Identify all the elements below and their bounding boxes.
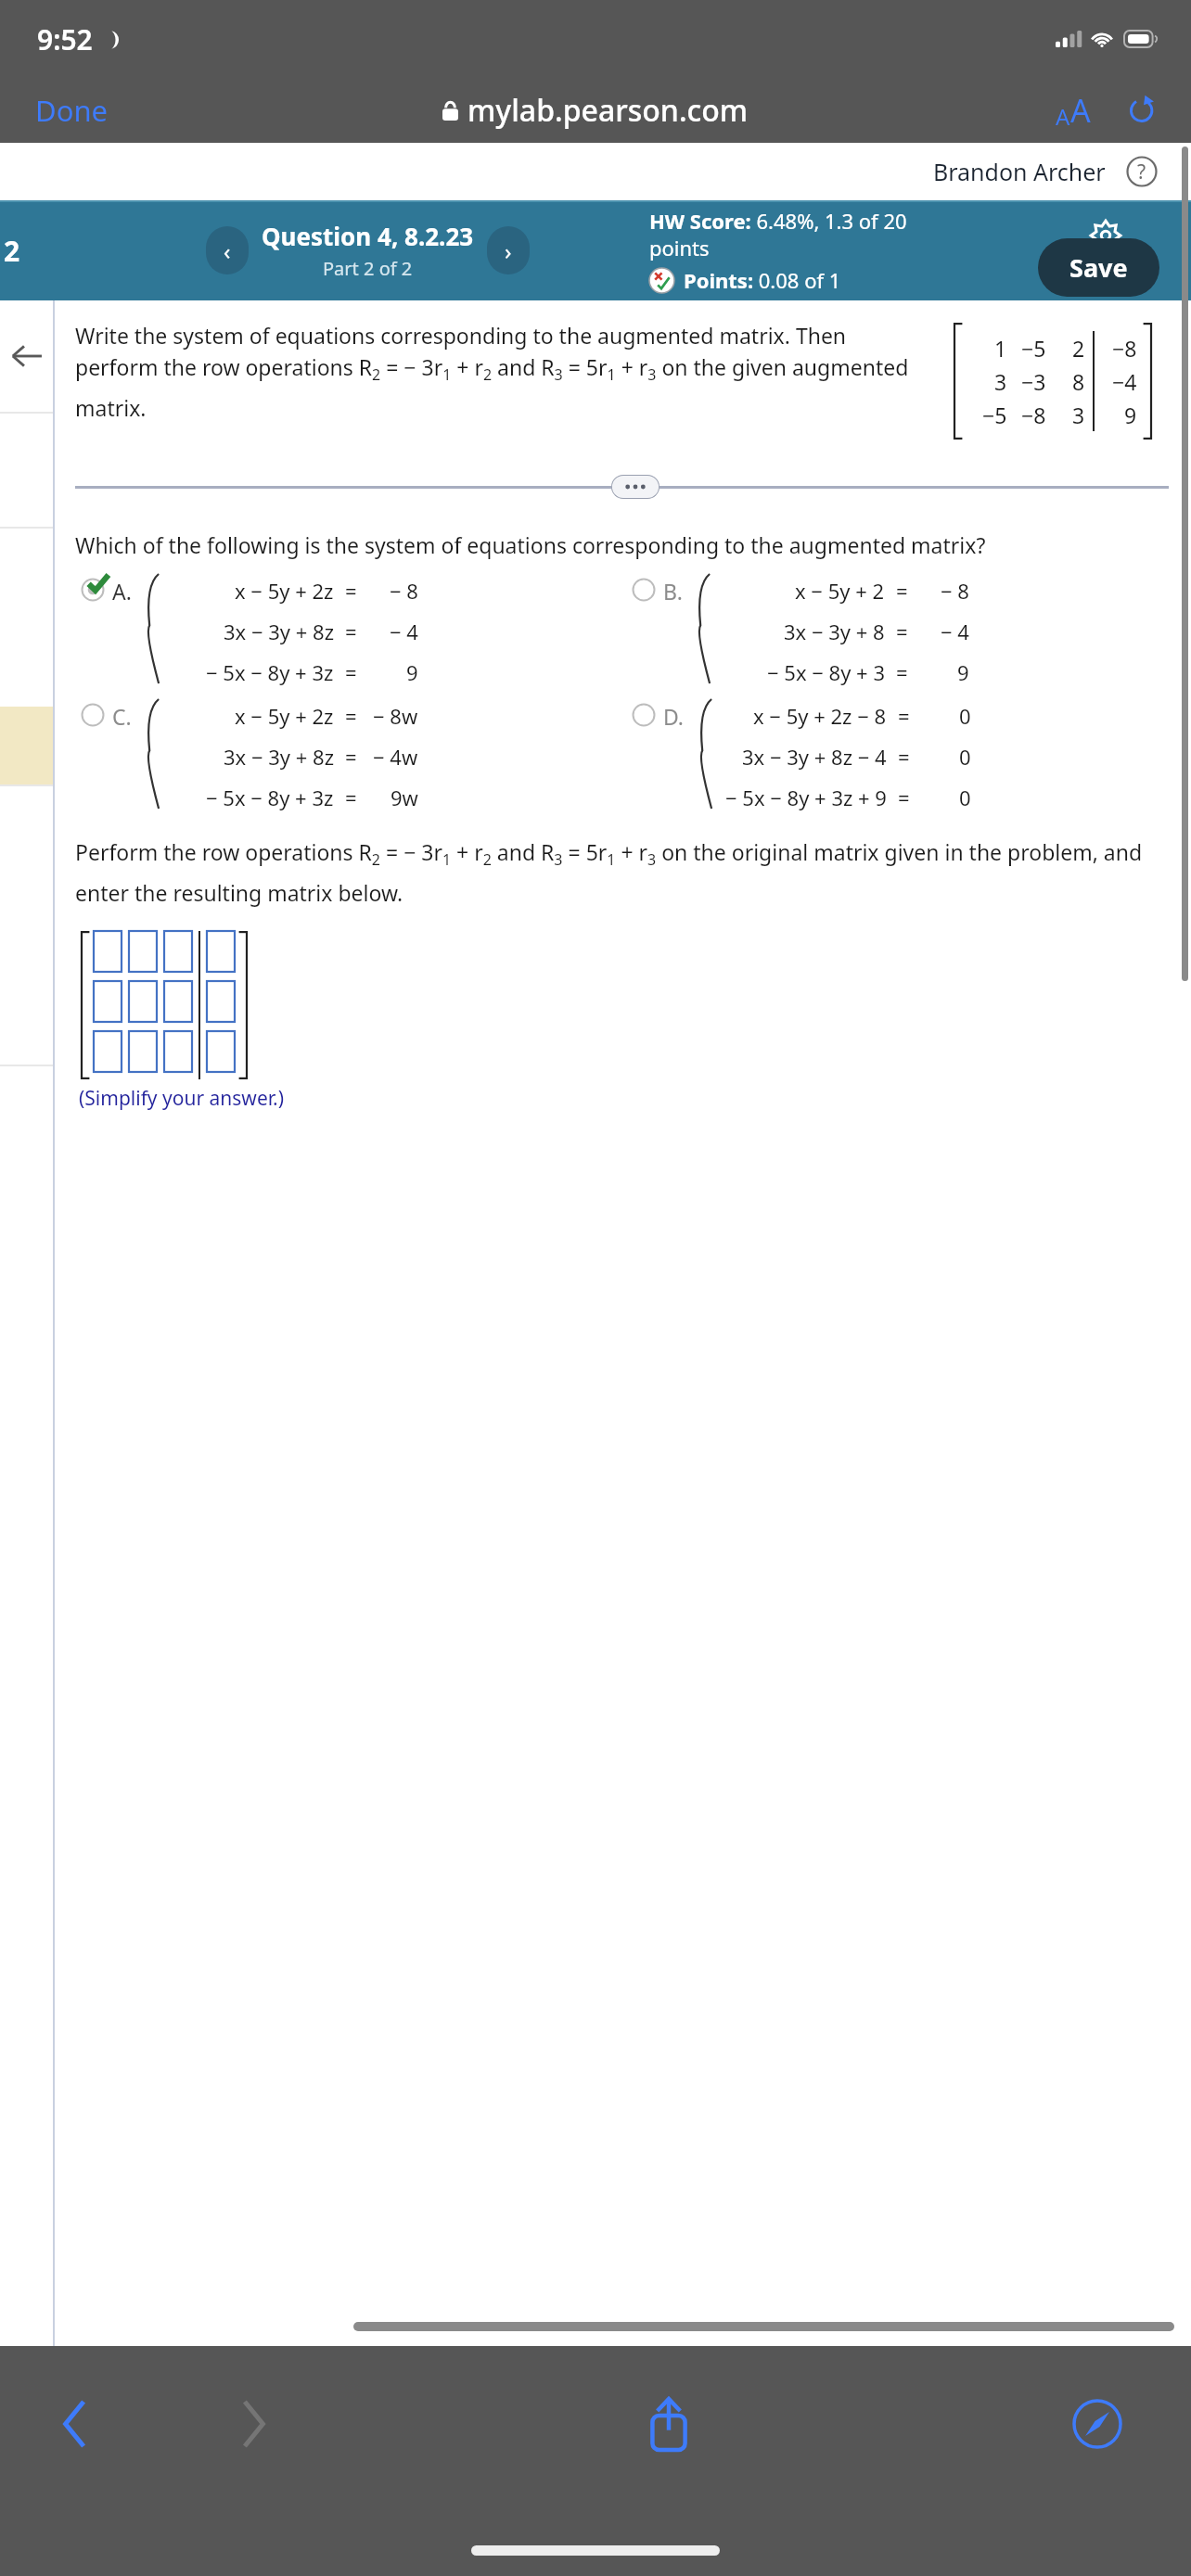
staticText: −8 bbox=[1021, 401, 1046, 429]
staticText: Which of the following is the system of … bbox=[75, 530, 986, 559]
staticText: = bbox=[896, 618, 908, 645]
staticText: = bbox=[345, 618, 357, 645]
button[interactable]: Share bbox=[632, 2381, 706, 2467]
staticText: 0 bbox=[959, 743, 971, 771]
staticText: − 5x − 8y + 3 bbox=[767, 658, 885, 686]
staticText: = bbox=[345, 743, 357, 771]
staticText: 9 bbox=[1124, 401, 1137, 429]
staticText: = bbox=[898, 743, 910, 771]
button[interactable]: Matrix entry bbox=[207, 931, 235, 972]
button[interactable]: B. bbox=[626, 572, 1178, 688]
staticText: 0 bbox=[959, 702, 971, 730]
button[interactable]: Help bbox=[1126, 156, 1158, 187]
staticText: 3x − 3y + 8 bbox=[784, 618, 885, 645]
button[interactable]: D. bbox=[626, 697, 1178, 813]
button[interactable]: Matrix entry bbox=[207, 981, 235, 1022]
staticText: 2 bbox=[4, 232, 20, 270]
staticText: x − 5y + 2z bbox=[235, 702, 334, 730]
staticText: = bbox=[345, 784, 357, 811]
staticText: = bbox=[345, 658, 357, 686]
button[interactable]: Previous question bbox=[206, 226, 249, 274]
staticText: Question 4, 8.2.23 bbox=[262, 220, 474, 252]
staticText: = bbox=[345, 577, 357, 605]
button[interactable]: Matrix entry bbox=[129, 1031, 157, 1072]
staticText: − 4 bbox=[941, 618, 969, 645]
staticText: A bbox=[1056, 101, 1070, 132]
staticText: − 5x − 8y + 3z + 9 bbox=[725, 784, 887, 811]
button[interactable]: Forward bbox=[224, 2385, 282, 2463]
staticText: −3 bbox=[1021, 367, 1046, 396]
staticText: = bbox=[896, 658, 908, 686]
staticText: − 8 bbox=[390, 577, 418, 605]
button[interactable]: Next question bbox=[487, 226, 530, 274]
staticText: 3x − 3y + 8z bbox=[224, 618, 334, 645]
staticText: 0 bbox=[959, 784, 971, 811]
button[interactable]: Matrix entry bbox=[94, 981, 122, 1022]
staticText: 3x − 3y + 8z − 4 bbox=[742, 743, 887, 771]
button[interactable]: Matrix entry bbox=[207, 1031, 235, 1072]
staticText: − 8w bbox=[373, 702, 418, 730]
staticText: 9:52 bbox=[37, 20, 93, 58]
staticText: −8 bbox=[1112, 334, 1137, 363]
staticText: 9w bbox=[391, 784, 418, 811]
staticText: Points: 0.08 of 1 bbox=[684, 266, 841, 294]
staticText: HW Score: 6.48%, 1.3 of 20 points bbox=[649, 207, 955, 261]
button[interactable]: Matrix entry bbox=[164, 981, 192, 1022]
staticText: 2 bbox=[1072, 334, 1085, 363]
staticText: 9 bbox=[406, 658, 418, 686]
staticText: − 8 bbox=[941, 577, 969, 605]
button[interactable]: Back bbox=[46, 2385, 104, 2463]
button[interactable]: Open in Safari bbox=[1056, 2382, 1139, 2466]
staticText: A. bbox=[112, 577, 132, 606]
staticText: 8 bbox=[1072, 367, 1085, 396]
staticText: x − 5y + 2z bbox=[235, 577, 334, 605]
button[interactable]: Reload bbox=[1117, 87, 1167, 134]
staticText: C. bbox=[112, 702, 132, 731]
staticText: ? bbox=[1137, 159, 1146, 185]
button[interactable]: C. bbox=[75, 697, 626, 813]
button[interactable]: More options bbox=[611, 475, 660, 499]
staticText: D. bbox=[663, 702, 685, 731]
staticText: ‹ bbox=[224, 236, 231, 266]
staticText: (Simplify your answer.) bbox=[79, 1085, 284, 1112]
staticText: 1 bbox=[994, 334, 1007, 363]
staticText: = bbox=[898, 784, 910, 811]
staticText: 3 bbox=[994, 367, 1007, 396]
staticText: − 4 bbox=[390, 618, 418, 645]
staticText: x − 5y + 2z − 8 bbox=[753, 702, 887, 730]
staticText: −5 bbox=[982, 401, 1007, 429]
staticText: = bbox=[345, 702, 357, 730]
staticText: = bbox=[896, 577, 908, 605]
staticText: Brandon Archer bbox=[933, 156, 1106, 187]
staticText: Perform the row operations R2 = − 3r1 + … bbox=[75, 837, 1163, 907]
button[interactable]: Matrix entry bbox=[94, 1031, 122, 1072]
staticText: A bbox=[1070, 89, 1091, 132]
staticText: Save bbox=[1069, 250, 1128, 285]
staticText: 3x − 3y + 8z bbox=[224, 743, 334, 771]
staticText: −4 bbox=[1112, 367, 1137, 396]
staticText: − 5x − 8y + 3z bbox=[206, 658, 334, 686]
button[interactable]: Matrix entry bbox=[164, 1031, 192, 1072]
staticText: − 4w bbox=[373, 743, 418, 771]
button[interactable]: Matrix entry bbox=[94, 931, 122, 972]
staticText: B. bbox=[663, 577, 683, 606]
button[interactable]: Save bbox=[1038, 238, 1159, 297]
button[interactable]: Matrix entry bbox=[129, 981, 157, 1022]
staticText: = bbox=[898, 702, 910, 730]
staticText: −5 bbox=[1021, 334, 1046, 363]
staticText: Write the system of equations correspond… bbox=[75, 321, 910, 422]
button[interactable]: A. bbox=[75, 572, 626, 688]
staticText: Done bbox=[35, 91, 109, 130]
staticText: 9 bbox=[957, 658, 969, 686]
staticText: 3 bbox=[1072, 401, 1085, 429]
staticText: mylab.pearson.com bbox=[467, 90, 749, 131]
staticText: Part 2 of 2 bbox=[323, 256, 413, 281]
button[interactable]: Done bbox=[0, 83, 144, 137]
button[interactable]: Matrix entry bbox=[129, 931, 157, 972]
button[interactable]: Back bbox=[9, 338, 45, 374]
staticText: › bbox=[505, 236, 512, 266]
button[interactable]: Settings bbox=[1089, 219, 1122, 252]
staticText: x − 5y + 2 bbox=[795, 577, 885, 605]
button[interactable]: Matrix entry bbox=[164, 931, 192, 972]
button[interactable]: Text size bbox=[1044, 82, 1102, 139]
